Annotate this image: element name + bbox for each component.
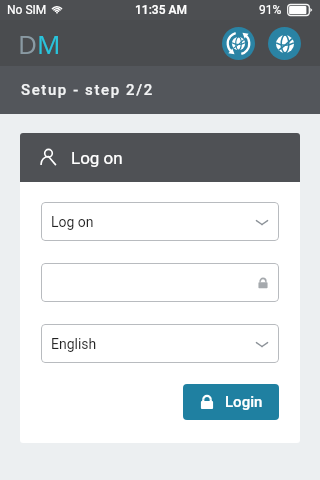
staticText: Log on — [71, 148, 123, 168]
button[interactable]: English — [41, 324, 279, 363]
staticText: Login — [225, 393, 263, 411]
staticText: 91% — [259, 3, 282, 17]
staticText: D — [18, 26, 37, 61]
button[interactable]: Log on — [41, 202, 279, 241]
button[interactable]: Open web — [268, 27, 301, 60]
staticText: English — [51, 336, 97, 352]
staticText: M — [37, 26, 61, 61]
button[interactable]: Login — [183, 384, 279, 420]
button[interactable]: Password — [41, 263, 279, 302]
button[interactable]: Synchronise — [222, 27, 255, 60]
staticText: Log on — [51, 214, 94, 230]
staticText: 11:35 AM — [135, 3, 187, 17]
staticText: Setup - step 2/2 — [21, 81, 154, 99]
staticText: No SIM — [7, 3, 47, 17]
